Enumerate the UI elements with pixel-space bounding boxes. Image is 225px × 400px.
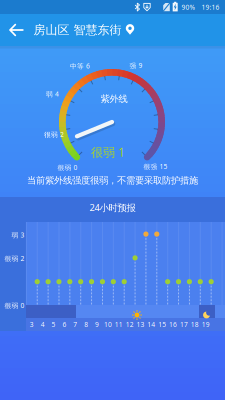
staticText: 很弱 2	[44, 130, 64, 139]
staticText: 3	[30, 320, 34, 329]
staticText: 6	[62, 320, 66, 329]
staticText: 11	[115, 320, 123, 329]
staticText: 强 9	[129, 61, 142, 70]
button[interactable]: Back	[6, 20, 27, 40]
staticText: 12	[126, 320, 134, 329]
staticText: 很弱 1	[91, 144, 125, 160]
staticText: 8	[84, 320, 88, 329]
staticText: 19:16	[201, 3, 219, 12]
staticText: 中等 6	[70, 62, 90, 70]
staticText: 17	[180, 320, 188, 329]
staticText: 9	[95, 320, 99, 329]
staticText: 很弱 2	[4, 254, 24, 263]
staticText: 15	[158, 320, 166, 329]
staticText: 紫外线	[100, 93, 127, 105]
staticText: 当前紫外线强度很弱，不需要采取防护措施	[27, 175, 198, 186]
staticText: 4	[41, 320, 45, 329]
button[interactable]: 房山区 智慧东街	[33, 23, 134, 37]
staticText: 14	[147, 320, 155, 329]
staticText: 13	[136, 320, 144, 329]
staticText: 很弱 0	[4, 301, 24, 310]
staticText: 5	[51, 320, 55, 329]
staticText: 10	[104, 320, 112, 329]
staticText: 24小时预报	[89, 201, 135, 214]
staticText: 房山区 智慧东街	[33, 23, 121, 37]
staticText: 90%	[181, 3, 195, 12]
staticText: 很弱 0	[57, 163, 77, 172]
staticText: 19	[202, 320, 210, 329]
staticText: 弱 4	[46, 90, 59, 98]
staticText: 很强 15	[143, 162, 167, 171]
staticText: 7	[73, 320, 77, 329]
staticText: 16	[169, 320, 177, 329]
staticText: 弱 3	[11, 231, 24, 239]
staticText: 18	[191, 320, 199, 329]
